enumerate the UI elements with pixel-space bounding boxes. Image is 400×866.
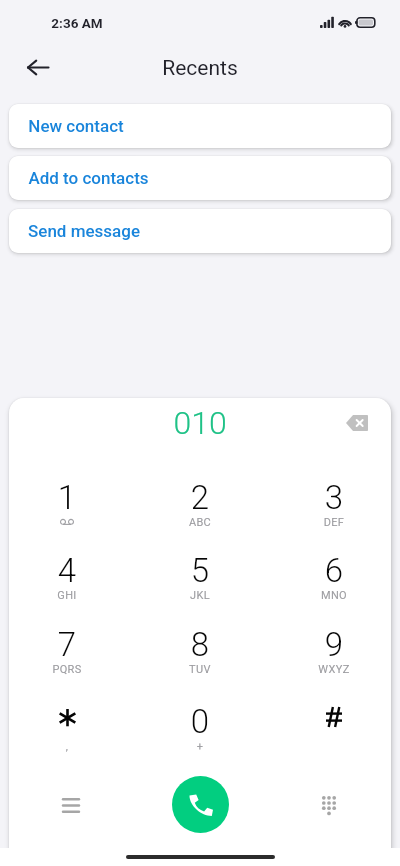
- staticText: New contact: [28, 116, 124, 136]
- button[interactable]: 4: [17, 546, 117, 608]
- button[interactable]: Backspace: [341, 407, 373, 439]
- button[interactable]: 3: [284, 473, 384, 535]
- staticText: WXYZ: [284, 663, 384, 676]
- staticText: JKL: [150, 589, 250, 602]
- button[interactable]: Send message: [9, 209, 391, 253]
- button[interactable]: 6: [284, 546, 384, 608]
- button[interactable]: Call log: [49, 783, 93, 827]
- staticText: 5: [150, 551, 250, 590]
- button[interactable]: 0: [150, 697, 250, 759]
- button[interactable]: ,: [17, 697, 117, 759]
- staticText: 1: [17, 478, 117, 517]
- staticText: 6: [284, 551, 384, 590]
- button[interactable]: New contact: [9, 104, 391, 148]
- button[interactable]: 5: [150, 546, 250, 608]
- button[interactable]: Back: [18, 47, 58, 87]
- staticText: 2: [150, 478, 250, 517]
- button[interactable]: 2: [150, 473, 250, 535]
- staticText: PQRS: [17, 663, 117, 676]
- staticText: MNO: [284, 589, 384, 602]
- staticText: 8: [150, 625, 250, 664]
- staticText: 3: [284, 478, 384, 517]
- button[interactable]: 8: [150, 620, 250, 682]
- staticText: TUV: [150, 663, 250, 676]
- staticText: 010: [173, 404, 227, 442]
- staticText: 0: [150, 702, 250, 741]
- staticText: GHI: [17, 589, 117, 602]
- button[interactable]: 7: [17, 620, 117, 682]
- button[interactable]: 1: [17, 473, 117, 535]
- button[interactable]: Add to contacts: [9, 156, 391, 200]
- staticText: ABC: [150, 516, 250, 529]
- staticText: 7: [17, 625, 117, 664]
- button[interactable]: Call: [172, 776, 229, 833]
- staticText: ,: [17, 740, 117, 753]
- staticText: Add to contacts: [28, 168, 149, 188]
- staticText: +: [150, 740, 250, 753]
- button[interactable]: 9: [284, 620, 384, 682]
- staticText: Recents: [162, 56, 238, 81]
- staticText: DEF: [284, 516, 384, 529]
- button[interactable]: Dialpad: [307, 783, 351, 827]
- staticText: 4: [17, 551, 117, 590]
- staticText: 9: [284, 625, 384, 664]
- button[interactable]: [284, 697, 384, 759]
- staticText: Send message: [28, 221, 140, 241]
- staticText: 2:36 AM: [51, 15, 103, 31]
